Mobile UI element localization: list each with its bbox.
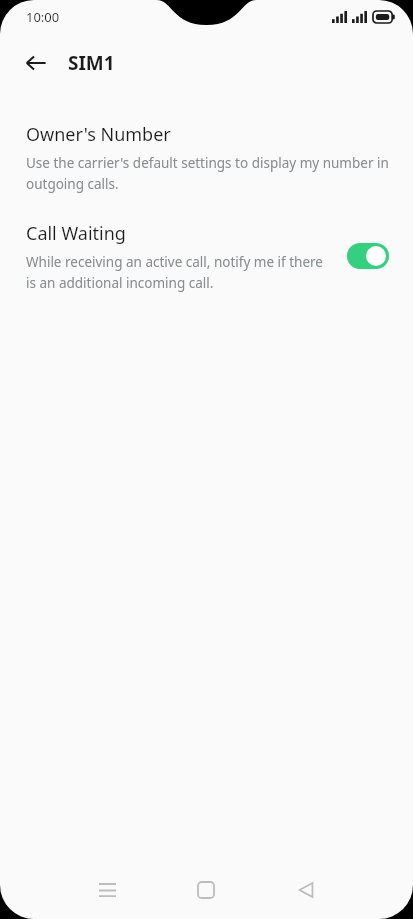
staticText: Call Waiting — [26, 221, 126, 246]
button[interactable]: Back — [14, 41, 58, 85]
staticText: Owner's Number — [26, 122, 171, 147]
button[interactable]: Back — [271, 861, 341, 919]
button[interactable]: Owner's Number — [0, 120, 413, 195]
button[interactable]: Call Waiting — [0, 219, 413, 294]
staticText: While receiving an active call, notify m… — [26, 253, 323, 292]
button[interactable]: Recents — [72, 861, 142, 919]
staticText: Use the carrier's default settings to di… — [26, 154, 389, 193]
button[interactable]: Home — [171, 861, 241, 919]
staticText: 10:00 — [26, 8, 60, 26]
button[interactable]: Call Waiting toggle — [347, 243, 389, 269]
staticText: SIM1 — [68, 50, 115, 76]
